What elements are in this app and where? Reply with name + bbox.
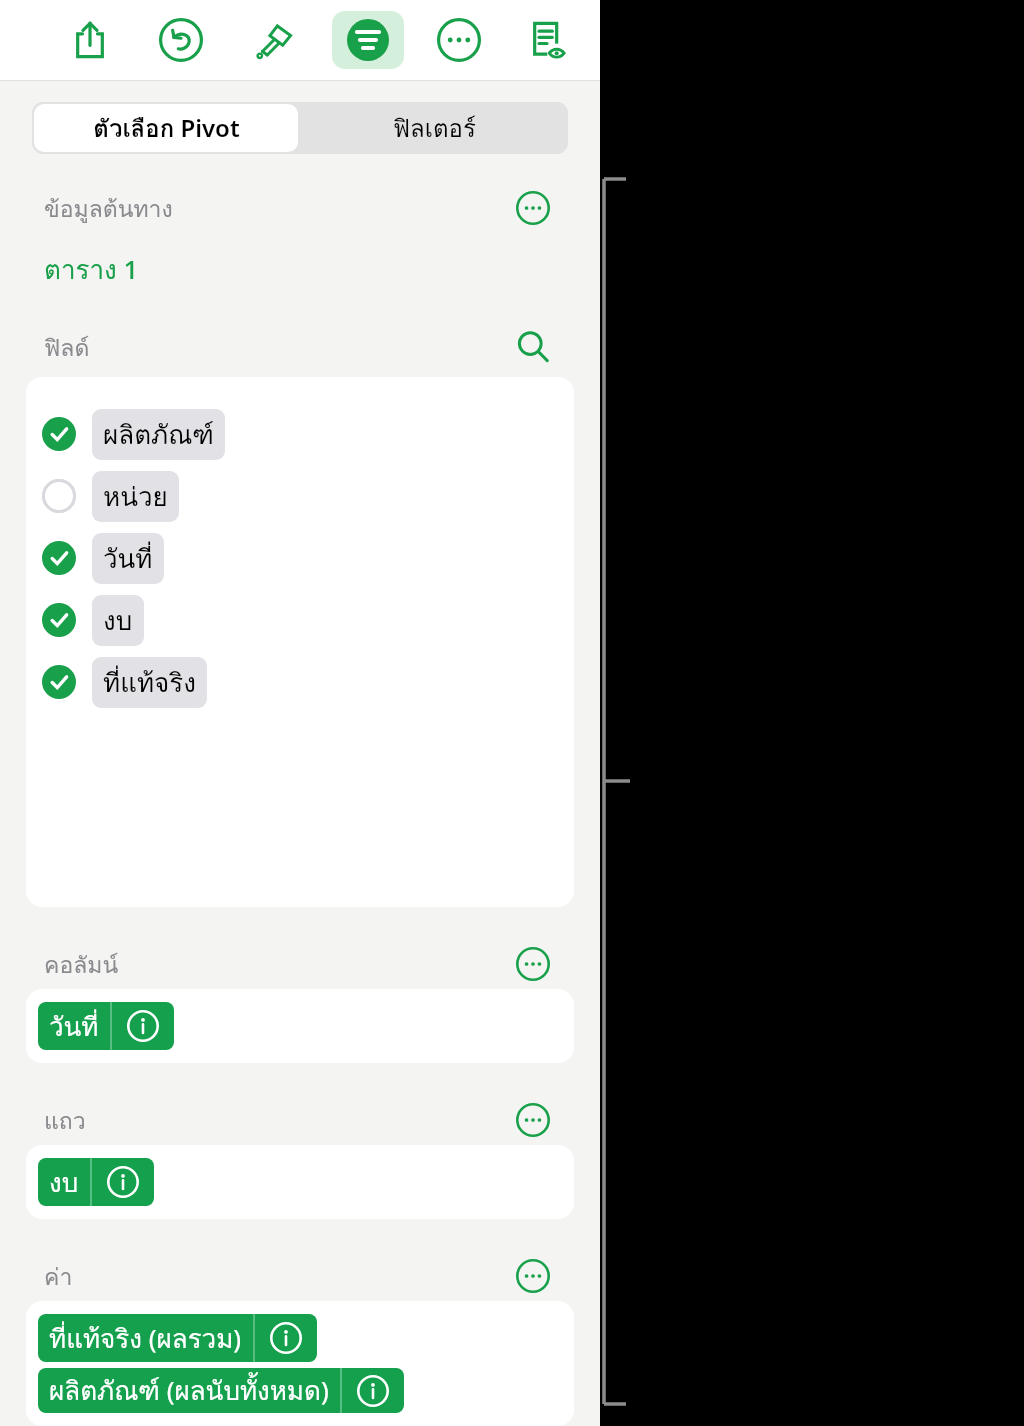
button[interactable]: Info: [255, 1314, 317, 1362]
staticText: ฟิลด์: [44, 330, 90, 364]
staticText: ที่แท้จริง: [103, 662, 196, 703]
staticText: แถว: [44, 1103, 86, 1137]
staticText: ที่แท้จริง (ผลรวม): [49, 1318, 242, 1359]
button[interactable]: More options: [510, 1259, 556, 1293]
button[interactable]: หน่วย: [26, 465, 574, 527]
button[interactable]: Share: [60, 10, 120, 70]
staticText: งบ: [49, 1162, 79, 1203]
button[interactable]: More: [429, 10, 489, 70]
button[interactable]: Undo: [151, 10, 211, 70]
button[interactable]: ผลิตภัณฑ์: [26, 403, 574, 465]
staticText: ค่า: [44, 1259, 73, 1293]
staticText: ข้อมูลต้นทาง: [44, 191, 173, 225]
button[interactable]: Info: [112, 1002, 174, 1050]
button[interactable]: More options: [510, 191, 556, 225]
staticText: คอลัมน์: [44, 947, 119, 981]
button[interactable]: Format: [243, 10, 303, 70]
button[interactable]: Preview: [517, 10, 577, 70]
staticText: วันที่: [49, 1006, 99, 1047]
staticText: ผลิตภัณฑ์: [103, 414, 214, 455]
staticText: ผลิตภัณฑ์ (ผลนับทั้งหมด): [49, 1370, 329, 1411]
button[interactable]: Search: [510, 330, 556, 364]
button[interactable]: ตัวเลือก Pivot: [34, 104, 298, 152]
button[interactable]: งบ: [38, 1158, 154, 1206]
button[interactable]: ที่แท้จริง (ผลรวม): [38, 1314, 317, 1362]
button[interactable]: Info: [342, 1368, 404, 1413]
staticText: ฟิลเตอร์: [393, 109, 476, 147]
button[interactable]: More options: [510, 1103, 556, 1137]
button[interactable]: Organize: [332, 11, 404, 69]
button[interactable]: ผลิตภัณฑ์ (ผลนับทั้งหมด): [38, 1368, 404, 1413]
staticText: งบ: [103, 600, 133, 641]
button[interactable]: ฟิลเตอร์: [300, 102, 568, 154]
staticText: วันที่: [103, 538, 153, 579]
staticText: ตัวเลือก Pivot: [93, 109, 240, 147]
button[interactable]: วันที่: [38, 1002, 174, 1050]
button[interactable]: งบ: [26, 589, 574, 651]
staticText: ตาราง 1: [44, 249, 139, 290]
staticText: หน่วย: [103, 476, 168, 517]
button[interactable]: ที่แท้จริง: [26, 651, 574, 713]
button[interactable]: วันที่: [26, 527, 574, 589]
button[interactable]: Info: [92, 1158, 154, 1206]
button[interactable]: More options: [510, 947, 556, 981]
